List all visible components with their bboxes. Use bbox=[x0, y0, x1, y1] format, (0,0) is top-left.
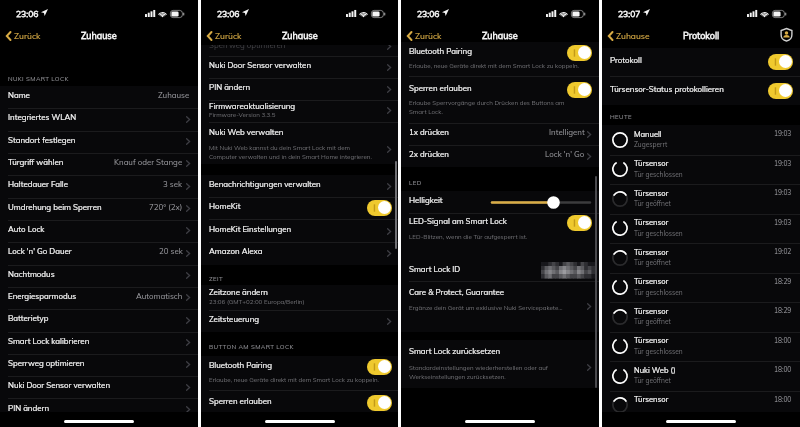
staticText: 19:03 bbox=[774, 129, 792, 137]
staticText: Türsensor bbox=[634, 276, 669, 286]
staticText: Erlaube, neue Geräte direkt mit dem Smar… bbox=[209, 376, 402, 384]
button[interactable]: Manuell bbox=[602, 125, 800, 155]
button[interactable]: Nuki Web () bbox=[602, 361, 800, 391]
button[interactable]: Auto Lock bbox=[0, 220, 198, 242]
button[interactable]: Energiesparmodus bbox=[0, 287, 198, 309]
staticText: BUTTON AM SMART LOCK bbox=[209, 343, 294, 351]
button[interactable]: Nuki Web verwalten bbox=[201, 122, 398, 159]
button[interactable]: Schalter bbox=[367, 395, 392, 411]
staticText: 19:02 bbox=[774, 247, 792, 255]
button[interactable]: Zuhause bbox=[605, 27, 653, 44]
button[interactable]: Care & Protect, Guarantee bbox=[401, 281, 599, 332]
button[interactable]: Türgriff wählen bbox=[0, 153, 198, 175]
staticText: HEUTE bbox=[610, 113, 633, 121]
button[interactable]: Umdrehung beim Sperren bbox=[0, 197, 198, 219]
button[interactable]: Zeitzone ändern bbox=[201, 285, 398, 310]
button[interactable]: Schalter bbox=[768, 83, 793, 99]
staticText: Smart Lock kalibrieren bbox=[8, 336, 90, 346]
button[interactable]: Zurück bbox=[3, 27, 44, 44]
button[interactable]: Zurück bbox=[204, 27, 245, 44]
button[interactable]: Nuki Door Sensor verwalten bbox=[0, 376, 198, 398]
button[interactable]: Helligkeit bbox=[401, 191, 599, 213]
button[interactable]: Schalter bbox=[567, 215, 592, 231]
staticText: Türsensor bbox=[634, 217, 669, 227]
staticText: Benachrichtigungen verwalten bbox=[209, 179, 321, 189]
staticText: 23:07 bbox=[618, 8, 641, 19]
button[interactable]: Schalter bbox=[768, 54, 793, 70]
staticText: Amazon Alexa bbox=[209, 246, 263, 256]
button[interactable]: Sperrweg optimieren bbox=[0, 354, 198, 376]
button[interactable]: Sperren erlauben bbox=[201, 390, 398, 415]
button[interactable]: Türsensor bbox=[602, 332, 800, 362]
button[interactable]: Türsensor bbox=[602, 155, 800, 185]
staticText: 18:00 bbox=[774, 395, 792, 403]
staticText: LED-Signal am Smart Lock bbox=[409, 216, 507, 226]
button[interactable]: Türsensor-Status protokollieren bbox=[602, 76, 800, 105]
staticText: Türsensor bbox=[634, 335, 669, 345]
button[interactable]: Standort festlegen bbox=[0, 130, 198, 152]
staticText: LED bbox=[409, 179, 422, 187]
button[interactable]: Protokoll bbox=[602, 48, 800, 76]
staticText: Knauf oder Stange bbox=[114, 157, 183, 167]
staticText: Manuell bbox=[634, 129, 662, 139]
button[interactable]: Smart Lock zurücksetzen bbox=[401, 340, 599, 388]
staticText: Türsensor bbox=[634, 188, 669, 198]
button[interactable]: Türsensor bbox=[602, 243, 800, 273]
button[interactable]: Lock 'n' Go Dauer bbox=[0, 242, 198, 264]
button[interactable]: Türsensor bbox=[602, 184, 800, 214]
staticText: Zuhause bbox=[81, 30, 117, 41]
staticText: Zuhause bbox=[158, 90, 190, 100]
button[interactable]: Schalter bbox=[367, 359, 392, 375]
button[interactable]: PIN ändern bbox=[0, 398, 198, 420]
staticText: Zuhause bbox=[482, 30, 518, 41]
button[interactable]: Bluetooth Pairing bbox=[401, 42, 599, 72]
button[interactable]: Türsensor bbox=[602, 214, 800, 244]
staticText: Erlaube, neue Geräte direkt mit dem Smar… bbox=[409, 62, 601, 70]
staticText: Auto Lock bbox=[8, 224, 45, 234]
staticText: Smart Lock ID bbox=[409, 264, 461, 274]
button[interactable]: Zeitsteuerung bbox=[201, 310, 398, 332]
button[interactable]: Zurück bbox=[404, 27, 445, 44]
staticText: Standardeinstellungen wiederherstellen o… bbox=[409, 364, 603, 380]
button[interactable]: LED-Signal am Smart Lock bbox=[401, 213, 599, 246]
staticText: 720° (2x) bbox=[149, 202, 183, 212]
staticText: Zeitzone ändern bbox=[209, 287, 268, 297]
button[interactable]: Türsensor bbox=[602, 273, 800, 303]
staticText: Türgriff wählen bbox=[8, 157, 64, 167]
staticText: Nuki Web () bbox=[634, 365, 676, 375]
button[interactable]: 1x drücken bbox=[401, 123, 599, 145]
button[interactable]: Sperren erlauben bbox=[401, 76, 599, 118]
staticText: Zeitsteuerung bbox=[209, 314, 260, 324]
staticText: Firmware-Version 3.3.5 bbox=[209, 111, 384, 119]
button[interactable]: PIN ändern bbox=[201, 78, 398, 100]
button[interactable]: Türsensor bbox=[602, 302, 800, 332]
staticText: Zurück bbox=[215, 30, 242, 41]
staticText: Sperrweg optimieren bbox=[8, 358, 85, 368]
button[interactable]: Nuki Door Sensor verwalten bbox=[201, 56, 398, 78]
button[interactable]: HomeKit Einstellungen bbox=[201, 220, 398, 242]
button[interactable]: Smart Lock ID bbox=[401, 253, 599, 281]
staticText: 3 sek bbox=[163, 179, 183, 189]
button[interactable]: Schalter bbox=[567, 45, 592, 61]
staticText: Mit Nuki Web kannst du dein Smart Lock m… bbox=[209, 144, 402, 160]
staticText: Batterietyp bbox=[8, 313, 49, 323]
staticText: Tür geschlossen bbox=[634, 229, 683, 237]
button[interactable]: Nachtmodus bbox=[0, 264, 198, 286]
button[interactable]: Bluetooth Pairing bbox=[201, 356, 398, 390]
button[interactable]: Benutzerkonto bbox=[779, 27, 794, 42]
button[interactable]: Batterietyp bbox=[0, 309, 198, 331]
button[interactable]: Integriertes WLAN bbox=[0, 108, 198, 130]
button[interactable]: Smart Lock kalibrieren bbox=[0, 331, 198, 353]
button[interactable]: Schalter bbox=[567, 82, 592, 98]
button[interactable]: Name bbox=[0, 86, 198, 108]
button[interactable]: Firmwareaktualisierung bbox=[201, 100, 398, 122]
button[interactable]: Amazon Alexa bbox=[201, 242, 398, 264]
button[interactable]: Haltedauer Falle bbox=[0, 175, 198, 197]
button[interactable]: Schalter bbox=[367, 200, 392, 216]
button[interactable]: HomeKit bbox=[201, 197, 398, 219]
button[interactable]: 2x drücken bbox=[401, 145, 599, 167]
staticText: Intelligent bbox=[549, 127, 585, 137]
button[interactable]: Benachrichtigungen verwalten bbox=[201, 175, 398, 197]
button[interactable]: Türsensor bbox=[602, 391, 800, 421]
staticText: 19:03 bbox=[774, 218, 792, 226]
